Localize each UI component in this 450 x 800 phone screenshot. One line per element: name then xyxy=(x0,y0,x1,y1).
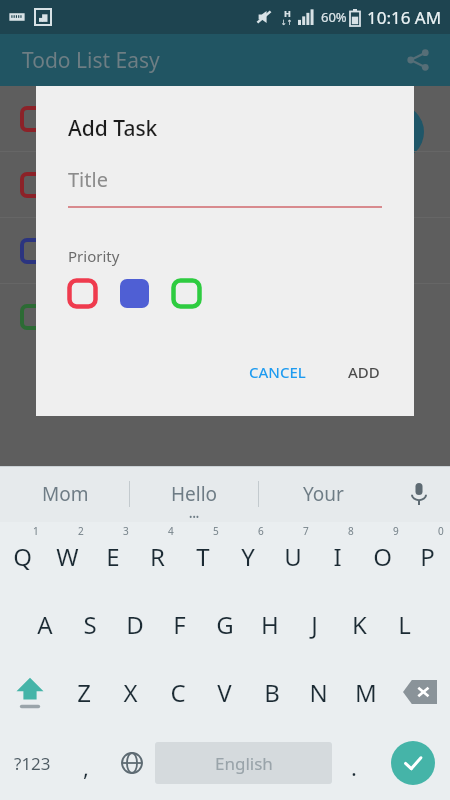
button[interactable]: Change language xyxy=(108,726,155,800)
button[interactable]: T xyxy=(180,522,225,590)
button[interactable] xyxy=(119,278,150,309)
staticText: 5 xyxy=(213,524,219,538)
staticText: E xyxy=(106,540,120,573)
staticText: C xyxy=(170,676,186,709)
button[interactable]: Add task xyxy=(368,104,424,160)
button[interactable]: Backspace xyxy=(389,658,450,726)
staticText: V xyxy=(217,676,232,709)
staticText: , xyxy=(83,752,89,782)
button[interactable] xyxy=(67,278,98,309)
staticText: P xyxy=(420,540,435,573)
button[interactable]: D xyxy=(112,590,157,658)
staticText: R xyxy=(150,540,165,573)
button[interactable]: ?123 xyxy=(0,726,64,800)
staticText: J xyxy=(311,608,318,641)
staticText: H xyxy=(284,7,291,19)
button[interactable]: Shift xyxy=(0,658,60,726)
staticText: Add Task xyxy=(68,114,158,143)
staticText: 2 xyxy=(78,524,84,538)
button[interactable]: X xyxy=(107,658,154,726)
staticText: ?123 xyxy=(14,752,51,775)
button[interactable]: U xyxy=(270,522,315,590)
button[interactable]: K xyxy=(337,590,382,658)
staticText: 6 xyxy=(258,524,264,538)
staticText: Priority xyxy=(68,246,120,266)
button[interactable]: Mom xyxy=(0,466,130,522)
staticText: 9 xyxy=(393,524,399,538)
staticText: Title xyxy=(68,166,108,193)
staticText: I xyxy=(333,540,342,573)
button[interactable] xyxy=(0,284,450,350)
staticText: F xyxy=(173,608,186,641)
button[interactable]: G xyxy=(202,590,247,658)
staticText: K xyxy=(352,608,367,641)
button[interactable]: S xyxy=(67,590,112,658)
button[interactable]: Z xyxy=(60,658,107,726)
staticText: Mom xyxy=(42,481,89,507)
staticText: 8 xyxy=(348,524,354,538)
staticText: 1 xyxy=(33,524,39,538)
staticText: ↓↑ xyxy=(281,19,293,27)
button[interactable]: I xyxy=(315,522,360,590)
button[interactable]: Share xyxy=(396,38,440,82)
button[interactable]: ADD xyxy=(334,354,394,390)
staticText: L xyxy=(398,608,411,641)
button[interactable]: . xyxy=(332,726,376,800)
staticText: 0 xyxy=(438,524,444,538)
staticText: D xyxy=(126,608,144,641)
staticText: 10:16 AM xyxy=(367,6,442,29)
staticText: 60% xyxy=(321,8,347,26)
button[interactable]: B xyxy=(248,658,295,726)
staticText: ••• xyxy=(189,510,200,522)
button[interactable]: R xyxy=(135,522,180,590)
staticText: Q xyxy=(13,540,32,573)
button[interactable]: Title xyxy=(68,160,382,208)
staticText: W xyxy=(56,540,79,573)
button[interactable]: A xyxy=(22,590,67,658)
staticText: 7 xyxy=(303,524,309,538)
button[interactable]: L xyxy=(382,590,427,658)
staticText: N xyxy=(309,676,328,709)
staticText: ADD xyxy=(348,362,380,382)
button[interactable]: Enter xyxy=(376,726,450,800)
button[interactable]: P xyxy=(405,522,450,590)
staticText: O xyxy=(373,540,392,573)
button[interactable]: E xyxy=(90,522,135,590)
button[interactable]: English xyxy=(155,742,332,784)
staticText: Hello xyxy=(171,481,218,507)
button[interactable]: Voice input xyxy=(388,466,450,522)
staticText: T xyxy=(196,540,210,573)
button[interactable] xyxy=(0,218,450,284)
button[interactable]: O xyxy=(360,522,405,590)
button[interactable]: V xyxy=(201,658,248,726)
button[interactable] xyxy=(0,152,450,218)
staticText: Z xyxy=(77,676,91,709)
staticText: H xyxy=(261,608,279,641)
staticText: X xyxy=(123,676,138,709)
button[interactable]: N xyxy=(295,658,342,726)
button[interactable]: M xyxy=(342,658,389,726)
button[interactable]: W xyxy=(45,522,90,590)
button[interactable]: C xyxy=(154,658,201,726)
staticText: U xyxy=(284,540,302,573)
button[interactable]: Your xyxy=(259,466,388,522)
staticText: Y xyxy=(241,540,255,573)
staticText: Your xyxy=(303,481,344,507)
button[interactable]: , xyxy=(64,726,108,800)
button[interactable]: H xyxy=(247,590,292,658)
button[interactable] xyxy=(171,278,202,309)
button[interactable]: Y xyxy=(225,522,270,590)
button[interactable]: F xyxy=(157,590,202,658)
button[interactable]: J xyxy=(292,590,337,658)
staticText: English xyxy=(215,752,273,775)
staticText: Todo List Easy xyxy=(22,46,160,75)
button[interactable]: Hello xyxy=(130,466,259,522)
staticText: 3 xyxy=(123,524,129,538)
staticText: M xyxy=(355,676,377,709)
staticText: . xyxy=(351,752,357,782)
button[interactable] xyxy=(0,86,450,152)
staticText: CANCEL xyxy=(249,362,306,382)
button[interactable]: CANCEL xyxy=(235,354,320,390)
staticText: G xyxy=(216,608,234,641)
button[interactable]: Q xyxy=(0,522,45,590)
